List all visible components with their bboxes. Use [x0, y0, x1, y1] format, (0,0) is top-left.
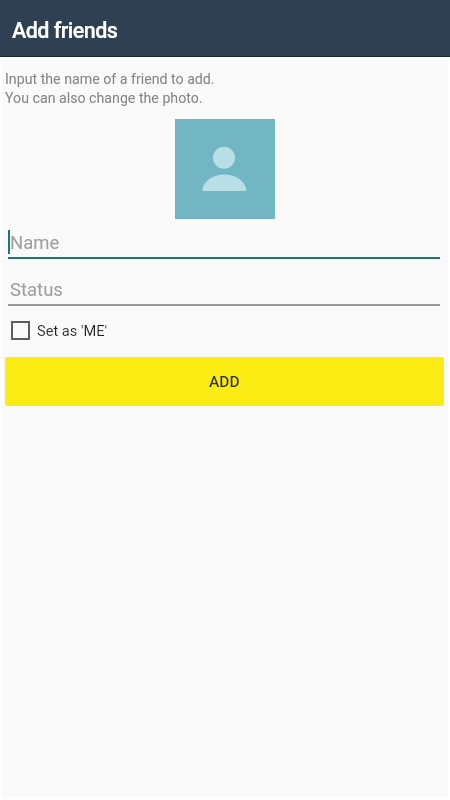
- staticText: You can also change the photo.: [5, 90, 203, 107]
- staticText: Input the name of a friend to add.: [5, 71, 215, 88]
- button[interactable]: Change photo: [175, 119, 275, 219]
- staticText: Name: [10, 232, 60, 254]
- button[interactable]: Add friends: [0, 0, 450, 57]
- button[interactable]: ADD: [5, 357, 444, 406]
- staticText: Set as 'ME': [37, 322, 108, 339]
- staticText: Add friends: [12, 18, 118, 43]
- staticText: Status: [10, 279, 63, 301]
- staticText: ADD: [209, 373, 240, 391]
- button[interactable]: Set as 'ME': [11, 318, 108, 342]
